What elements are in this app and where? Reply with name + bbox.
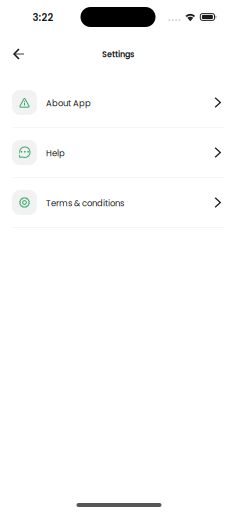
button[interactable]: Back (3, 41, 33, 67)
staticText: Help (46, 147, 65, 159)
button[interactable]: Terms & conditions (0, 178, 236, 228)
button[interactable]: About App (0, 78, 236, 128)
button[interactable]: Help (0, 128, 236, 178)
staticText: About App (46, 97, 91, 109)
staticText: 3:22 (32, 10, 53, 24)
staticText: Terms & conditions (46, 197, 124, 209)
staticText: Settings (102, 49, 134, 60)
